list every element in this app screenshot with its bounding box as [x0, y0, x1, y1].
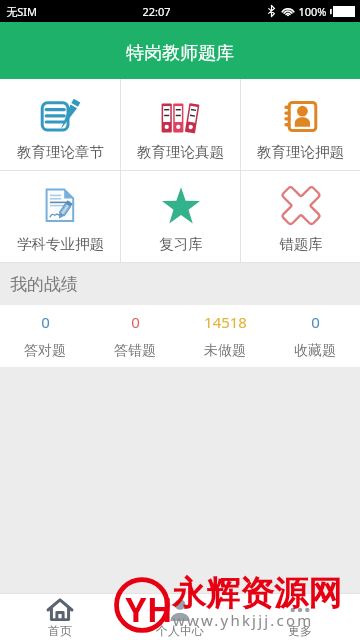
staticText: 教育理论真题 — [137, 143, 224, 161]
staticText: 学科专业押题 — [17, 235, 104, 253]
staticText: 14518 — [204, 312, 247, 332]
button[interactable]: 0 — [270, 305, 360, 367]
staticText: 错题库 — [279, 235, 323, 253]
button[interactable]: 教育理论真题 — [121, 79, 240, 170]
button[interactable]: 学科专业押题 — [0, 171, 120, 262]
staticText: 100% — [298, 4, 327, 19]
staticText: 更多 — [288, 623, 312, 638]
staticText: 首页 — [48, 623, 72, 638]
button[interactable]: 复习库 — [121, 171, 240, 262]
staticText: 答对题 — [24, 342, 66, 360]
button[interactable]: 教育理论押题 — [241, 79, 360, 170]
staticText: 无SIM — [6, 4, 37, 19]
staticText: 复习库 — [159, 235, 203, 253]
button[interactable]: 首页 — [0, 594, 120, 640]
button[interactable]: 0 — [90, 305, 180, 367]
staticText: 0 — [131, 312, 140, 332]
staticText: 收藏题 — [294, 342, 336, 360]
staticText: www.yhkjjj.com — [173, 610, 314, 630]
staticText: 0 — [311, 312, 320, 332]
button[interactable]: 更多 — [240, 594, 360, 640]
staticText: 0 — [41, 312, 50, 332]
button[interactable]: 个人中心 — [120, 594, 240, 640]
staticText: 22:07 — [142, 4, 171, 19]
staticText: 教育理论押题 — [257, 143, 344, 161]
staticText: 教育理论章节 — [17, 143, 104, 161]
button[interactable]: 0 — [0, 305, 90, 367]
staticText: 特岗教师题库 — [126, 42, 234, 65]
staticText: 答错题 — [114, 342, 156, 360]
staticText: 个人中心 — [156, 623, 204, 638]
button[interactable]: 14518 — [180, 305, 270, 367]
staticText: YH — [125, 586, 173, 632]
button[interactable]: 错题库 — [241, 171, 360, 262]
staticText: 我的战绩 — [10, 274, 78, 295]
staticText: 未做题 — [204, 342, 246, 360]
button[interactable]: 教育理论章节 — [0, 79, 120, 170]
staticText: 永辉资源网 — [172, 572, 342, 615]
